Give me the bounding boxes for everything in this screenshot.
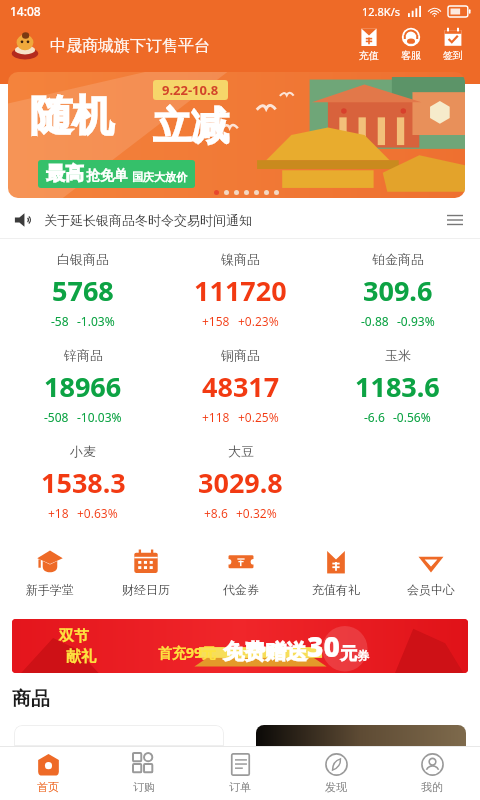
staticText: 首页 [37, 780, 59, 794]
staticText: 订购 [133, 780, 155, 794]
button[interactable]: 订购 [96, 747, 192, 800]
staticText: 铂金商品 [372, 251, 424, 267]
staticText: 新手学堂 [26, 582, 74, 597]
staticText: 锌商品 [64, 347, 103, 363]
staticText: -0.56% [393, 409, 431, 425]
staticText: 1538.3 [41, 464, 126, 501]
staticText: 客服 [401, 49, 421, 62]
button[interactable]: 9.22-10.8 [8, 72, 465, 198]
staticText: +0.23% [238, 313, 279, 329]
staticText: +0.32% [236, 505, 277, 521]
staticText: 最高 [46, 162, 84, 186]
staticText: 玉米 [385, 347, 411, 363]
button[interactable]: 小麦 [4, 441, 162, 523]
button[interactable]: 关于延长银商品冬时令交易时间通知 [0, 202, 480, 238]
button[interactable]: 锌商品 [4, 345, 162, 427]
button[interactable]: 首页 [0, 747, 96, 800]
staticText: 财经日历 [122, 582, 170, 597]
button[interactable]: 我的 [384, 747, 480, 800]
staticText: 立减 [153, 102, 229, 150]
staticText: 12.8K/s [362, 4, 400, 19]
staticText: +118 [202, 409, 230, 425]
button[interactable]: 玉米 [319, 345, 476, 427]
staticText: 献礼 [66, 647, 96, 666]
staticText: 商品 [12, 687, 50, 711]
staticText: +0.63% [77, 505, 118, 521]
staticText: 双节 [59, 627, 89, 646]
button[interactable]: 客服 [390, 22, 432, 70]
staticText: 小麦 [70, 443, 96, 459]
staticText: 发现 [325, 780, 347, 794]
staticText: 镍商品 [221, 251, 260, 267]
staticText: -6.6 [364, 409, 385, 425]
staticText: -0.93% [397, 313, 435, 329]
staticText: 白银商品 [57, 251, 109, 267]
staticText: 铜商品 [221, 347, 260, 363]
button[interactable]: 充值有礼 [288, 545, 383, 601]
button[interactable]: 代金券 [193, 545, 288, 601]
staticText: 309.6 [363, 272, 433, 309]
button[interactable]: 铜商品 [162, 345, 319, 427]
button[interactable]: 大豆 [162, 441, 319, 523]
staticText: -10.03% [77, 409, 122, 425]
staticText: 5768 [52, 272, 114, 309]
button[interactable]: 镍商品 [162, 249, 319, 331]
staticText: 3029.8 [198, 464, 283, 501]
staticText: 国庆大放价 [132, 170, 187, 184]
staticText: +8.6 [204, 505, 228, 521]
staticText: 大豆 [228, 443, 254, 459]
button[interactable]: 白银商品 [4, 249, 162, 331]
button[interactable]: 发现 [288, 747, 384, 800]
staticText: 我的 [421, 780, 443, 794]
staticText: 首充99元 [158, 643, 217, 662]
staticText: 9.22-10.8 [162, 81, 219, 99]
button[interactable]: 新手学堂 [2, 545, 98, 601]
button[interactable]: 订单 [192, 747, 288, 800]
staticText: 充值有礼 [312, 582, 360, 597]
staticText: 免费赠送 [223, 639, 307, 665]
staticText: 会员中心 [407, 582, 455, 597]
staticText: 抢免单 [86, 167, 128, 185]
staticText: 关于延长银商品冬时令交易时间通知 [44, 212, 252, 228]
staticText: 充值 [359, 49, 379, 62]
staticText: 30 [307, 627, 340, 665]
staticText: 中晟商城旗下订售平台 [50, 36, 210, 56]
staticText: 元 [340, 643, 357, 664]
staticText: 1183.6 [355, 368, 440, 405]
button[interactable]: 更多公告 [444, 209, 466, 231]
button[interactable]: 财经日历 [98, 545, 193, 601]
staticText: 18966 [44, 368, 122, 405]
staticText: 14:08 [10, 3, 41, 19]
button[interactable]: 签到 [432, 22, 474, 70]
button[interactable]: 铂金商品 [319, 249, 476, 331]
staticText: 订单 [229, 780, 251, 794]
staticText: 随机 [30, 90, 114, 143]
staticText: 券 [357, 648, 369, 663]
staticText: -1.03% [77, 313, 115, 329]
button[interactable]: 会员中心 [383, 545, 478, 601]
staticText: -58 [51, 313, 69, 329]
staticText: -508 [44, 409, 69, 425]
staticText: 111720 [194, 272, 287, 309]
button[interactable]: 双节 [12, 619, 468, 673]
staticText: +158 [202, 313, 230, 329]
staticText: 签到 [443, 49, 463, 62]
staticText: 代金券 [223, 582, 259, 597]
staticText: +18 [48, 505, 69, 521]
button[interactable]: 充值 [348, 22, 390, 70]
staticText: 48317 [202, 368, 280, 405]
button[interactable] [256, 725, 466, 746]
button[interactable] [14, 725, 224, 746]
staticText: +0.25% [238, 409, 279, 425]
staticText: -0.88 [361, 313, 389, 329]
